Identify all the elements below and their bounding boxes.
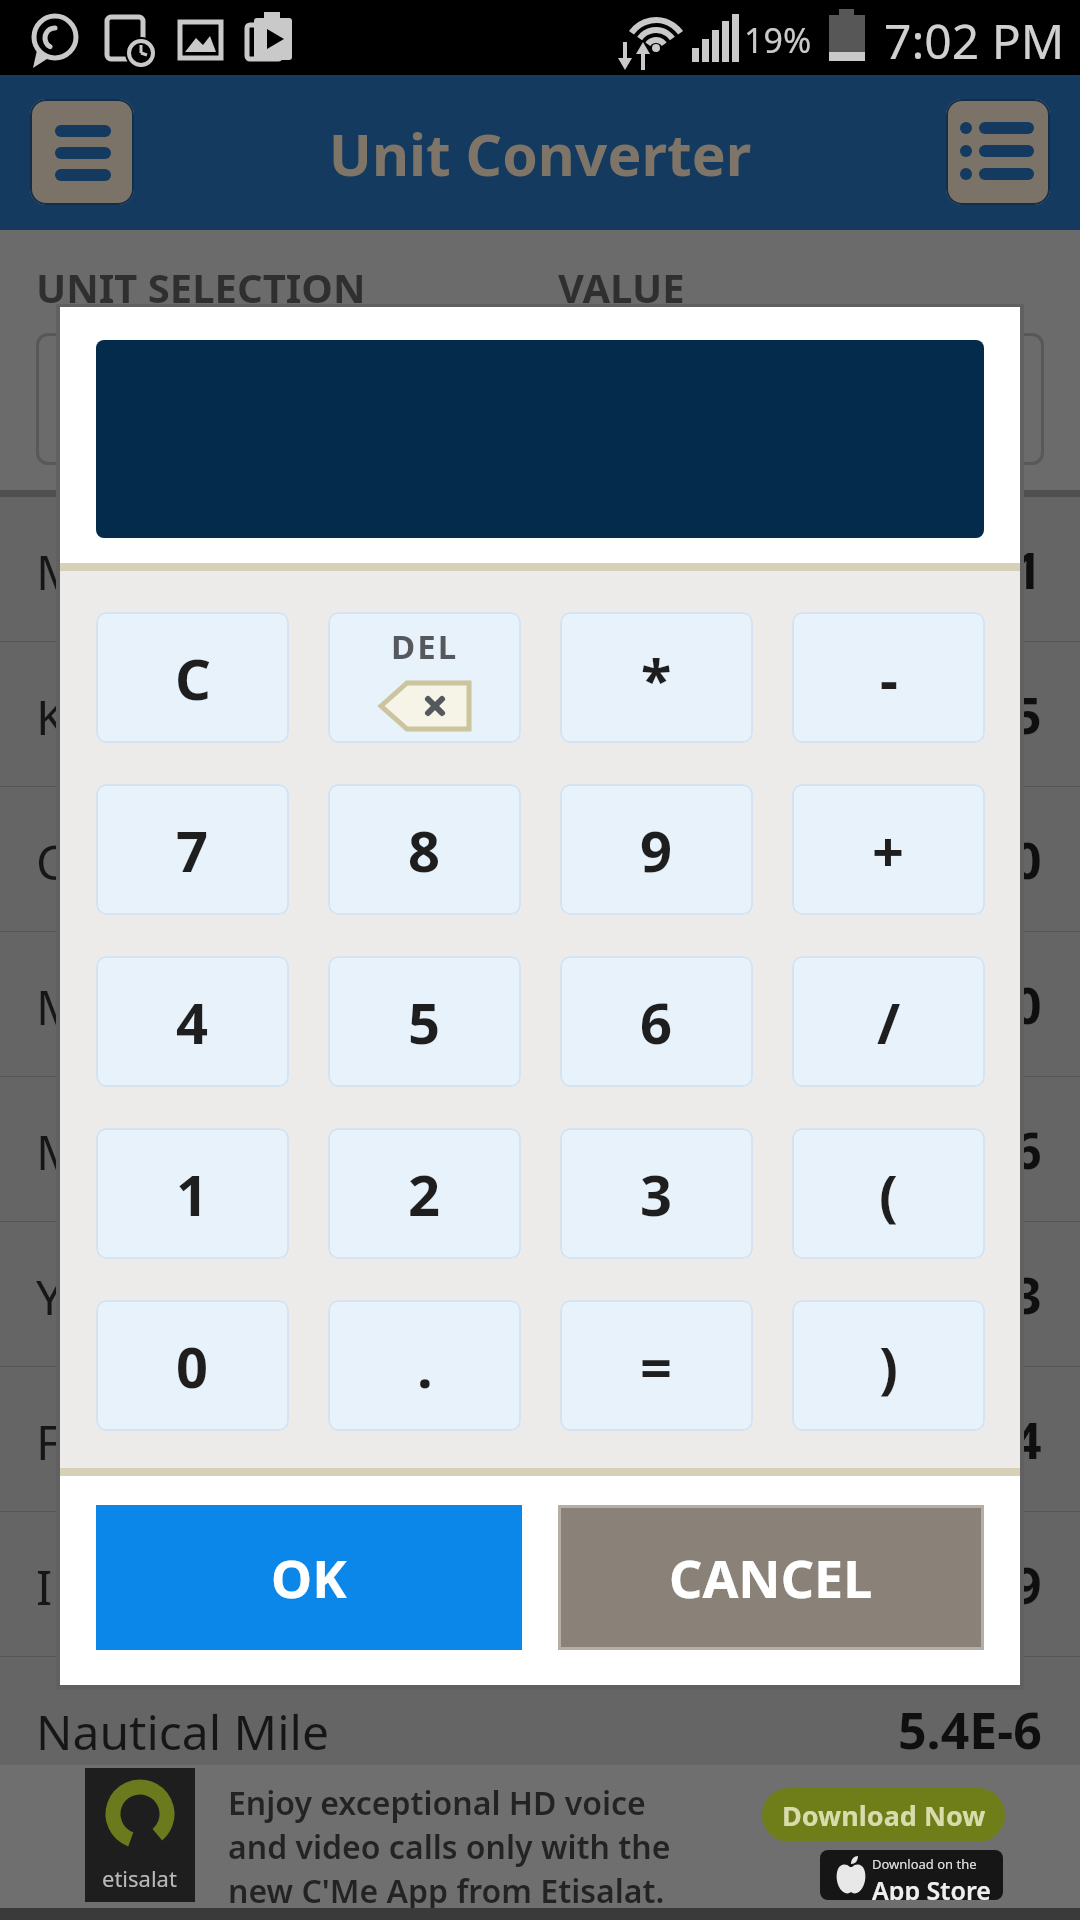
button[interactable]: 7 — [96, 784, 289, 915]
button[interactable]: 8 — [328, 784, 521, 915]
staticText: and video calls only with the — [228, 1825, 671, 1869]
staticText: 6 — [640, 984, 673, 1060]
staticText: = — [640, 1328, 673, 1404]
staticText: Unit Converter — [0, 115, 1080, 193]
staticText: Download on the — [872, 1855, 977, 1873]
button[interactable]: C — [96, 612, 289, 743]
button[interactable]: + — [792, 784, 985, 915]
button[interactable]: - — [792, 612, 985, 743]
staticText: 7 — [176, 812, 209, 888]
staticText: 4 — [1013, 1406, 1042, 1474]
staticText: ( — [879, 1156, 898, 1232]
staticText: new C'Me App from Etisalat. — [228, 1869, 665, 1913]
button[interactable]: Download on the — [820, 1850, 1003, 1900]
staticText: 6 — [1013, 1116, 1042, 1184]
staticText: 9 — [640, 812, 673, 888]
button[interactable]: 1 — [96, 1128, 289, 1259]
staticText: Micrometer — [36, 1119, 300, 1184]
staticText: 1 — [1013, 536, 1042, 604]
staticText: etisalat — [102, 1863, 177, 1893]
staticText: VALUE — [558, 260, 685, 314]
staticText: 5 — [408, 984, 441, 1060]
button[interactable]: CANCEL — [558, 1505, 984, 1650]
staticText: 3 — [640, 1156, 673, 1232]
staticText: C — [175, 640, 211, 716]
staticText: Inch — [36, 1554, 135, 1619]
button[interactable]: 9 — [560, 784, 753, 915]
staticText: Centimeter — [36, 829, 289, 894]
staticText: * — [641, 640, 672, 716]
staticText: Nautical Mile — [36, 1699, 329, 1764]
staticText: 3 — [1013, 1261, 1042, 1329]
staticText: 1 — [176, 1156, 209, 1232]
staticText: Meter — [36, 539, 171, 604]
staticText: 0 — [1013, 826, 1042, 894]
button[interactable]: 4 — [96, 956, 289, 1087]
button[interactable]: 6 — [560, 956, 753, 1087]
staticText: Enjoy exceptional HD voice — [228, 1781, 646, 1825]
button[interactable]: / — [792, 956, 985, 1087]
button[interactable]: OK — [96, 1505, 522, 1650]
staticText: 19% — [744, 17, 812, 63]
staticText: + — [872, 812, 905, 888]
staticText: UNIT SELECTION — [36, 260, 366, 314]
staticText: 0 — [1013, 971, 1042, 1039]
button[interactable]: . — [328, 1300, 521, 1431]
staticText: 4 — [176, 984, 209, 1060]
button[interactable]: 3 — [560, 1128, 753, 1259]
button[interactable] — [30, 99, 134, 205]
staticText: Foot — [36, 1409, 137, 1474]
button[interactable]: Download Now — [762, 1788, 1005, 1842]
staticText: Millimeter — [36, 974, 266, 1039]
button[interactable]: ( — [792, 1128, 985, 1259]
staticText: OK — [271, 1542, 347, 1613]
staticText: DEL — [391, 624, 459, 669]
button[interactable]: * — [560, 612, 753, 743]
button[interactable]: 2 — [328, 1128, 521, 1259]
staticText: 0 — [176, 1328, 209, 1404]
staticText: 2 — [408, 1156, 441, 1232]
staticText: Kilometer — [36, 684, 256, 749]
button[interactable]: = — [560, 1300, 753, 1431]
staticText: 9 — [1013, 1551, 1042, 1619]
button[interactable]: DEL — [328, 612, 521, 743]
staticText: 5.4E-6 — [898, 1696, 1042, 1764]
staticText: CANCEL — [669, 1542, 873, 1613]
button[interactable]: 5 — [328, 956, 521, 1087]
button[interactable]: 0 — [96, 1300, 289, 1431]
staticText: App Store — [872, 1873, 991, 1900]
staticText: / — [877, 984, 901, 1060]
staticText: Download Now — [782, 1797, 986, 1834]
staticText: 7:02 PM — [884, 8, 1065, 73]
staticText: 8 — [408, 812, 441, 888]
button[interactable]: ) — [792, 1300, 985, 1431]
staticText: 5 — [1013, 681, 1042, 749]
staticText: ) — [879, 1328, 898, 1404]
staticText: - — [880, 640, 898, 716]
staticText: Yard — [36, 1264, 137, 1329]
staticText: . — [417, 1328, 433, 1404]
button[interactable] — [946, 99, 1050, 205]
